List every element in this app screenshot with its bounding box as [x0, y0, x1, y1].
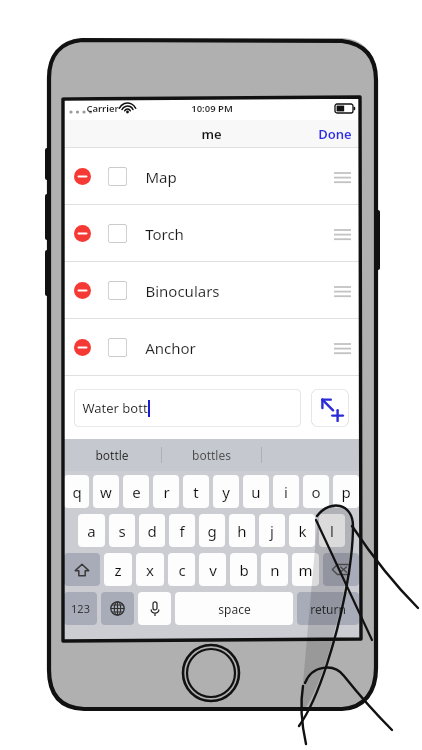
- staticText: m: [298, 560, 313, 580]
- button[interactable]: p: [333, 475, 359, 508]
- button[interactable]: o: [303, 475, 329, 508]
- other: Reorder Binoculars: [334, 285, 351, 297]
- staticText: l: [330, 521, 334, 541]
- button[interactable]: Shift: [64, 553, 100, 586]
- other: Reorder Anchor: [334, 342, 351, 354]
- staticText: return: [310, 601, 346, 617]
- button[interactable]: b: [230, 553, 257, 586]
- button[interactable]: Delete Torch: [74, 225, 91, 242]
- staticText: bottle: [95, 447, 129, 463]
- button[interactable]: Delete Binoculars: [62, 262, 361, 319]
- staticText: v: [209, 560, 217, 580]
- staticText: r: [163, 482, 170, 502]
- staticText: j: [270, 521, 274, 541]
- other: Reorder Torch: [334, 228, 351, 240]
- staticText: q: [72, 482, 82, 502]
- button[interactable]: Delete Anchor: [62, 319, 361, 376]
- button[interactable]: m: [292, 553, 319, 586]
- staticText: t: [193, 482, 199, 502]
- staticText: Binoculars: [145, 281, 220, 301]
- button[interactable]: d: [139, 514, 165, 547]
- staticText: Torch: [145, 224, 184, 244]
- staticText: k: [298, 521, 307, 541]
- staticText: u: [251, 482, 261, 502]
- button[interactable]: Toggle Anchor: [108, 338, 127, 357]
- staticText: bottles: [192, 447, 231, 463]
- button[interactable]: v: [199, 553, 226, 586]
- staticText: s: [118, 521, 126, 541]
- staticText: w: [100, 482, 112, 502]
- button[interactable]: Delete Binoculars: [74, 282, 91, 299]
- button[interactable]: c: [168, 553, 195, 586]
- staticText: e: [132, 482, 141, 502]
- staticText: Water bott: [82, 399, 148, 417]
- button[interactable]: k: [289, 514, 315, 547]
- button[interactable]: r: [153, 475, 179, 508]
- button[interactable]: a: [78, 514, 105, 547]
- staticText: x: [146, 560, 154, 580]
- button[interactable]: Delete Map: [62, 148, 361, 205]
- button[interactable]: x: [136, 553, 164, 586]
- button[interactable]: w: [93, 475, 119, 508]
- button[interactable]: Toggle Torch: [108, 224, 127, 243]
- button[interactable]: l: [319, 514, 345, 547]
- staticText: a: [87, 521, 96, 541]
- staticText: Done: [318, 125, 352, 143]
- staticText: 10:09 PM: [191, 102, 233, 115]
- button[interactable]: Delete Anchor: [74, 339, 91, 356]
- staticText: d: [147, 521, 157, 541]
- staticText: Carrier: [86, 102, 119, 115]
- button[interactable]: e: [123, 475, 149, 508]
- button[interactable]: Delete Torch: [62, 205, 361, 262]
- button[interactable]: y: [213, 475, 239, 508]
- button[interactable]: Done: [309, 121, 361, 147]
- button[interactable]: return: [297, 592, 359, 625]
- staticText: n: [270, 560, 280, 580]
- staticText: Anchor: [145, 338, 196, 358]
- staticText: me: [201, 125, 222, 143]
- staticText: p: [341, 482, 351, 502]
- button[interactable]: n: [261, 553, 288, 586]
- staticText: space: [218, 601, 251, 617]
- staticText: c: [178, 560, 186, 580]
- other: Reorder Map: [334, 171, 351, 183]
- staticText: 123: [71, 601, 90, 616]
- button[interactable]: q: [64, 475, 89, 508]
- staticText: h: [237, 521, 247, 541]
- button[interactable]: f: [169, 514, 195, 547]
- button[interactable]: s: [109, 514, 135, 547]
- button[interactable]: Toggle Binoculars: [108, 281, 127, 300]
- staticText: Map: [145, 167, 177, 187]
- button[interactable]: j: [259, 514, 285, 547]
- button[interactable]: Add item: [311, 389, 349, 427]
- button[interactable]: Water bott: [74, 389, 301, 427]
- button[interactable]: Backspace: [323, 553, 359, 586]
- button[interactable]: u: [243, 475, 269, 508]
- staticText: y: [222, 482, 230, 502]
- staticText: z: [114, 560, 122, 580]
- button[interactable]: Dictation: [138, 592, 171, 625]
- staticText: b: [239, 560, 249, 580]
- staticText: i: [284, 482, 288, 502]
- button[interactable]: z: [104, 553, 132, 586]
- button[interactable]: t: [183, 475, 209, 508]
- button[interactable]: 123: [64, 592, 97, 625]
- button[interactable]: Delete Map: [74, 168, 91, 185]
- button[interactable]: bottle: [62, 439, 161, 471]
- button[interactable]: i: [273, 475, 299, 508]
- button[interactable]: space: [175, 592, 293, 625]
- staticText: f: [179, 521, 185, 541]
- button[interactable]: h: [229, 514, 255, 547]
- staticText: g: [207, 521, 217, 541]
- button[interactable]: [262, 439, 361, 471]
- button[interactable]: g: [199, 514, 225, 547]
- staticText: o: [311, 482, 321, 502]
- button[interactable]: Switch keyboard: [101, 592, 134, 625]
- button[interactable]: Toggle Map: [108, 167, 127, 186]
- button[interactable]: bottles: [162, 439, 261, 471]
